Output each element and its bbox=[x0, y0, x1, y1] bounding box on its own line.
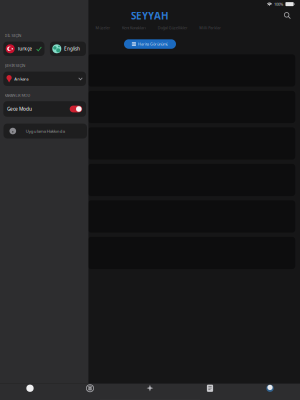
staticText: Müzeler bbox=[95, 25, 110, 30]
staticText: KARANLIK MOD bbox=[4, 93, 30, 98]
staticText: English bbox=[64, 46, 80, 52]
button[interactable]: Türkçe bbox=[3, 42, 44, 56]
button[interactable]: Milli Parklar bbox=[193, 23, 227, 33]
button[interactable]: Doğal Güzellikler bbox=[152, 23, 193, 33]
button[interactable]: Notes bbox=[180, 385, 240, 392]
staticText: Gece Modu bbox=[7, 106, 32, 112]
staticText: Doğal Güzellikler bbox=[158, 25, 188, 30]
button[interactable]: Search bbox=[282, 10, 293, 21]
staticText: Türkçe bbox=[17, 46, 32, 52]
button[interactable]: Uygulama Hakkında bbox=[3, 124, 87, 138]
button[interactable]: Kent Konakları bbox=[116, 23, 152, 33]
button[interactable]: Ankara bbox=[3, 72, 86, 86]
button[interactable]: English bbox=[50, 42, 86, 56]
button[interactable]: Settings bbox=[60, 385, 120, 392]
staticText: Uygulama Hakkında bbox=[26, 128, 65, 134]
staticText: Ankara bbox=[14, 76, 28, 82]
button[interactable]: Shortcuts bbox=[120, 385, 180, 392]
button[interactable]: Safari bbox=[0, 385, 60, 392]
button[interactable]: Weather bbox=[240, 385, 300, 392]
staticText: ŞEHİR SEÇİN bbox=[4, 63, 25, 68]
staticText: Milli Parklar bbox=[199, 25, 221, 30]
staticText: DİL SEÇİN bbox=[4, 33, 21, 38]
staticText: 100% bbox=[274, 1, 283, 7]
staticText: Kent Konakları bbox=[122, 25, 146, 30]
button[interactable]: Gece Modu bbox=[3, 101, 86, 117]
staticText: Harita Görünümü bbox=[138, 41, 168, 47]
staticText: SEYYAH bbox=[131, 9, 169, 22]
button[interactable]: Harita Görünümü bbox=[124, 39, 176, 49]
button[interactable]: Müzeler bbox=[90, 23, 116, 33]
